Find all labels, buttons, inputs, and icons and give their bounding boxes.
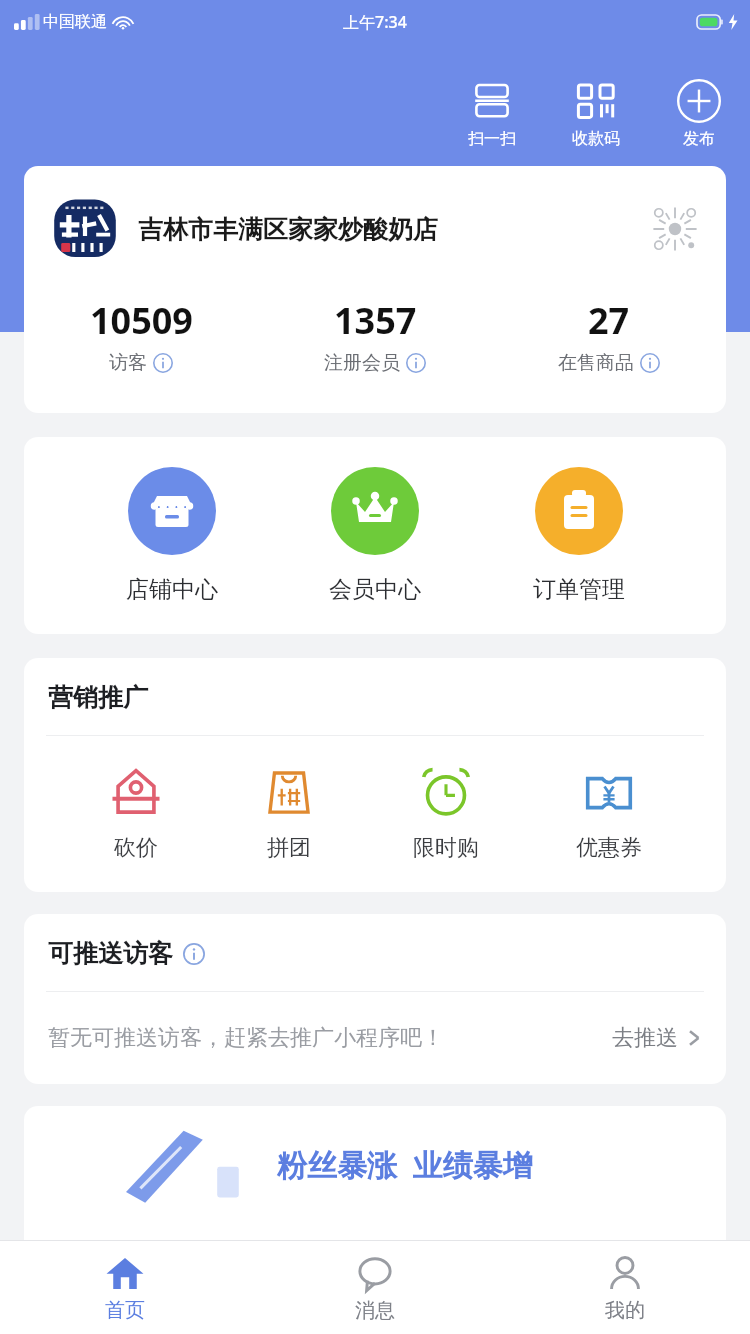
button[interactable]: 二维码 [648, 202, 702, 256]
staticText: 我的 [605, 1298, 645, 1323]
button[interactable]: 收款码 [570, 78, 622, 149]
staticText: 消息 [355, 1298, 395, 1323]
button[interactable]: 订单管理 [523, 467, 635, 604]
button[interactable]: 扫一扫 [466, 78, 518, 149]
button[interactable]: 消息 [250, 1241, 500, 1334]
staticText: 限时购 [413, 834, 479, 862]
other: 扫一扫 [472, 81, 512, 121]
button[interactable]: 可推送访客 [48, 938, 205, 969]
staticText: 吉林市丰满区家家炒酸奶店 [138, 214, 638, 245]
staticText: 中国联通 [43, 12, 107, 32]
staticText: 访客 [109, 351, 147, 375]
button[interactable]: 限时购 [401, 764, 491, 862]
staticText: 营销推广 [48, 682, 148, 713]
button[interactable]: 1357 [258, 296, 492, 375]
staticText: 发布 [683, 129, 715, 149]
staticText: 在售商品 [558, 351, 634, 375]
button[interactable]: 会员中心 [319, 467, 431, 604]
staticText: 首页 [105, 1298, 145, 1323]
button[interactable]: 砍价 [96, 764, 176, 862]
button[interactable]: 粉丝暴涨 业绩暴增 [24, 1106, 726, 1256]
button[interactable]: 27 [492, 296, 726, 375]
staticText: 可推送访客 [48, 938, 173, 969]
button[interactable]: 拼团 [249, 764, 329, 862]
staticText: 优惠券 [576, 834, 642, 862]
staticText: 订单管理 [533, 575, 625, 604]
other: 二维码 [648, 202, 702, 256]
button[interactable]: 优惠券 [564, 764, 654, 862]
button[interactable]: 发布 [674, 78, 724, 149]
button[interactable]: 首页 [0, 1241, 250, 1334]
staticText: 粉丝暴涨 业绩暴增 [277, 1144, 533, 1185]
other: 收款码 [576, 81, 616, 121]
staticText: 砍价 [114, 834, 158, 862]
staticText: 1357 [334, 296, 417, 345]
button[interactable]: 去推送 [612, 1024, 702, 1052]
staticText: 店铺中心 [126, 575, 218, 604]
staticText: 扫一扫 [468, 129, 516, 149]
button[interactable]: 10509 [24, 296, 258, 375]
other: 发布 [677, 79, 721, 123]
staticText: 会员中心 [329, 575, 421, 604]
staticText: 27 [588, 296, 630, 345]
staticText: 注册会员 [324, 351, 400, 375]
button[interactable]: 店铺中心 [116, 467, 228, 604]
staticText: 拼团 [267, 834, 311, 862]
staticText: 暂无可推送访客，赶紧去推广小程序吧！ [48, 1024, 612, 1052]
button[interactable]: 我的 [500, 1241, 750, 1334]
staticText: 10509 [90, 296, 193, 345]
staticText: 上午7:34 [343, 11, 407, 33]
staticText: 去推送 [612, 1024, 678, 1052]
staticText: 收款码 [572, 129, 620, 149]
